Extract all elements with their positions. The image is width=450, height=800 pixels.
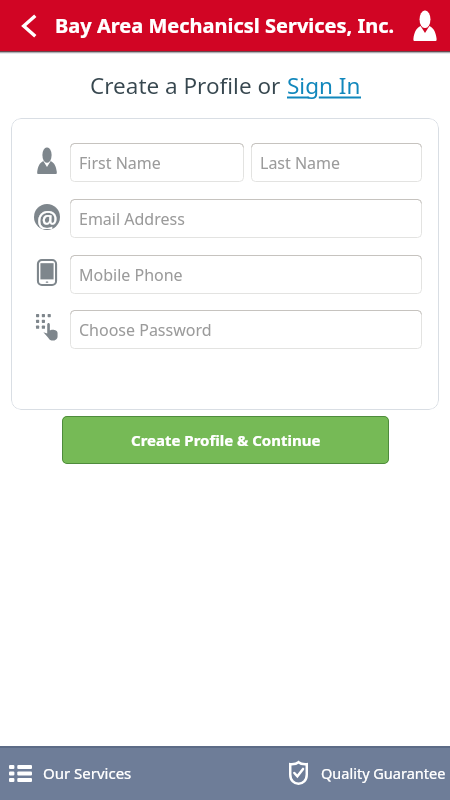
staticText: Mobile Phone	[79, 264, 183, 286]
staticText: Create Profile & Continue	[131, 430, 321, 450]
button[interactable]: Choose Password	[70, 310, 422, 349]
staticText: Email Address	[79, 208, 185, 230]
button[interactable]: Sign In	[287, 70, 361, 101]
staticText: Sign In	[287, 70, 361, 101]
button[interactable]: Back	[7, 0, 52, 51]
staticText: Quality Guarantee	[321, 763, 446, 783]
staticText: Our Services	[43, 763, 132, 783]
staticText: First Name	[79, 152, 161, 174]
button[interactable]: Our Services	[4, 746, 137, 800]
staticText: Create a Profile or	[90, 70, 287, 101]
button[interactable]: Quality Guarantee	[284, 746, 450, 800]
staticText: Last Name	[260, 152, 341, 174]
button[interactable]: Account	[402, 0, 448, 51]
button[interactable]: First Name	[70, 143, 244, 182]
staticText: @	[37, 204, 58, 229]
staticText: Choose Password	[79, 319, 212, 341]
button[interactable]: Create Profile & Continue	[62, 416, 389, 464]
button[interactable]: Mobile Phone	[70, 255, 422, 294]
staticText: Bay Area Mechanicsl Services, Inc.	[55, 12, 395, 39]
button[interactable]: Email Address	[70, 199, 422, 238]
button[interactable]: Last Name	[251, 143, 422, 182]
